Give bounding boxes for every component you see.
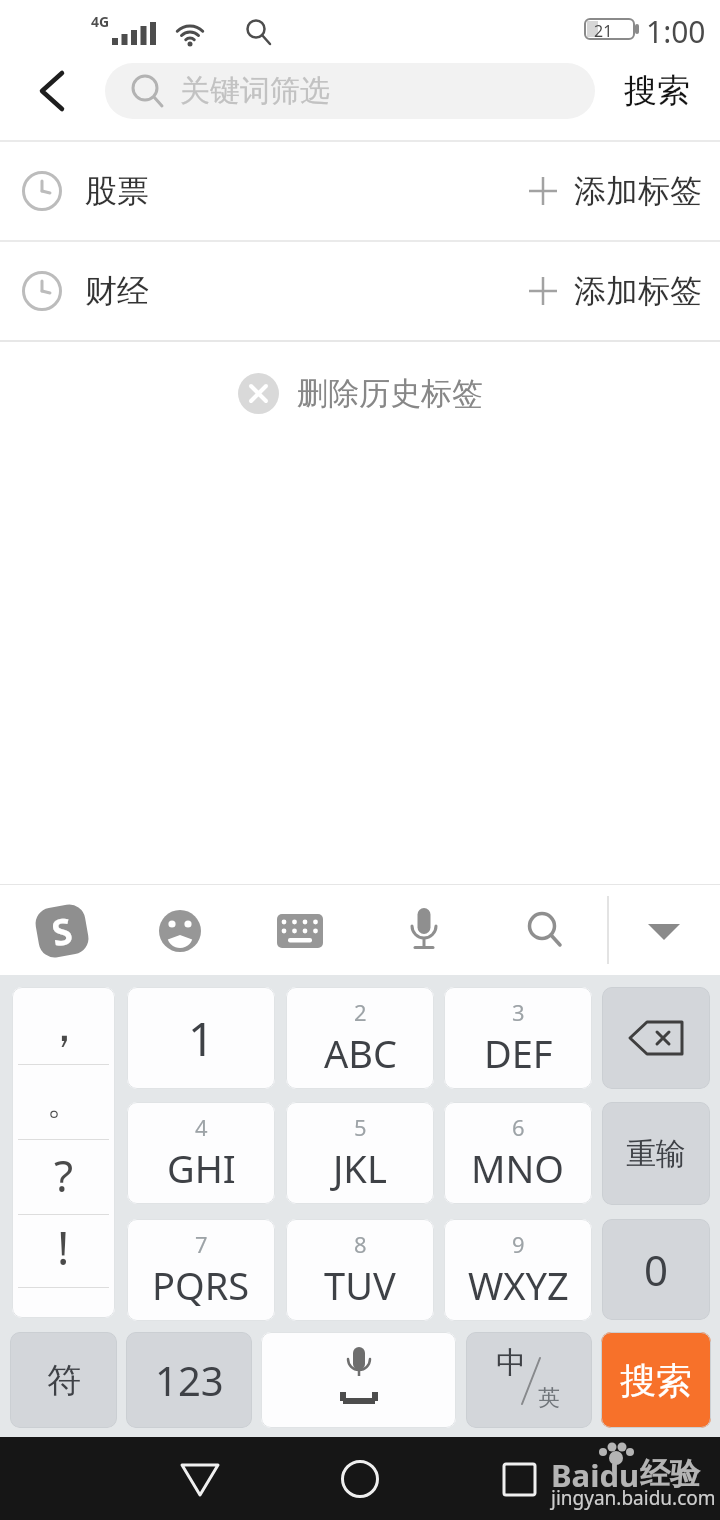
button[interactable] xyxy=(602,987,710,1089)
button[interactable]: 。 xyxy=(12,1065,115,1139)
button[interactable] xyxy=(261,1332,456,1428)
button[interactable]: 2 xyxy=(286,987,434,1089)
staticText: WXYZ xyxy=(468,1259,569,1311)
staticText: 财经 xyxy=(85,271,149,311)
staticText: 重输 xyxy=(626,1135,686,1173)
staticText: 6 xyxy=(512,1112,525,1142)
staticText: 123 xyxy=(155,1353,224,1407)
staticText: 7 xyxy=(195,1229,208,1259)
staticText: GHI xyxy=(167,1142,236,1194)
button[interactable]: ， xyxy=(12,989,115,1063)
staticText: 股票 xyxy=(85,171,149,211)
button[interactable]: 股票 xyxy=(0,142,720,240)
button[interactable] xyxy=(505,887,585,975)
staticText: MNO xyxy=(471,1142,565,1194)
staticText: 5 xyxy=(354,1112,367,1142)
staticText: 搜索 xyxy=(620,1358,692,1403)
staticText: 4G xyxy=(91,12,110,31)
button[interactable] xyxy=(24,70,76,112)
button[interactable] xyxy=(330,1437,390,1520)
button[interactable]: 删除历史标签 xyxy=(238,373,483,414)
button[interactable]: ? xyxy=(12,1138,115,1212)
button[interactable] xyxy=(633,887,695,975)
staticText: 9 xyxy=(512,1229,525,1259)
staticText: 21 xyxy=(594,20,613,42)
staticText: TUV xyxy=(324,1259,396,1311)
staticText: ， xyxy=(41,997,87,1055)
button[interactable]: 重输 xyxy=(602,1102,710,1205)
button[interactable]: 7 xyxy=(127,1219,275,1321)
button[interactable]: 1 xyxy=(127,987,275,1089)
button[interactable]: 6 xyxy=(444,1102,592,1204)
staticText: ? xyxy=(54,1145,74,1205)
staticText: 2 xyxy=(354,997,367,1027)
button[interactable]: 搜索 xyxy=(602,56,712,126)
staticText: DEF xyxy=(484,1027,553,1079)
staticText: Baidu xyxy=(551,1454,640,1496)
button[interactable]: 123 xyxy=(126,1332,252,1428)
staticText: 3 xyxy=(512,997,525,1027)
button[interactable] xyxy=(140,887,220,975)
button[interactable] xyxy=(384,887,464,975)
button[interactable] xyxy=(260,887,340,975)
staticText: JKL xyxy=(333,1142,387,1194)
staticText: 删除历史标签 xyxy=(297,374,483,413)
button[interactable]: 搜索 xyxy=(601,1332,711,1428)
button[interactable]: 0 xyxy=(602,1219,710,1320)
staticText: 搜索 xyxy=(624,70,690,112)
button[interactable]: 中 xyxy=(466,1332,592,1428)
staticText: 英 xyxy=(538,1384,560,1412)
staticText: 添加标签 xyxy=(574,171,702,211)
staticText: 关键词筛选 xyxy=(180,72,330,110)
button[interactable]: 5 xyxy=(286,1102,434,1204)
button[interactable]: S xyxy=(22,887,102,975)
staticText: 1:00 xyxy=(646,11,706,52)
staticText: S xyxy=(48,906,76,957)
button[interactable]: 财经 xyxy=(0,242,720,340)
staticText: 0 xyxy=(644,1241,669,1298)
staticText: 经验 xyxy=(640,1455,700,1493)
staticText: ! xyxy=(57,1216,70,1279)
staticText: 添加标签 xyxy=(574,271,702,311)
staticText: 4 xyxy=(195,1112,208,1142)
button[interactable]: 关键词筛选 xyxy=(105,63,595,119)
button[interactable]: 添加标签 xyxy=(515,242,720,340)
staticText: ABC xyxy=(324,1027,397,1079)
button[interactable]: ! xyxy=(12,1210,115,1284)
staticText: jingyan.baidu.com xyxy=(551,1485,716,1511)
button[interactable]: 符 xyxy=(10,1332,117,1428)
button[interactable]: 9 xyxy=(444,1219,592,1321)
staticText: 符 xyxy=(47,1359,81,1402)
staticText: 1 xyxy=(188,1007,215,1070)
button[interactable]: 添加标签 xyxy=(515,142,720,240)
button[interactable] xyxy=(490,1437,550,1520)
staticText: 。 xyxy=(47,1081,81,1124)
button[interactable]: 3 xyxy=(444,987,592,1089)
button[interactable] xyxy=(170,1437,230,1520)
button[interactable]: 4 xyxy=(127,1102,275,1204)
staticText: 8 xyxy=(354,1229,367,1259)
staticText: PQRS xyxy=(152,1259,250,1311)
button[interactable]: 8 xyxy=(286,1219,434,1321)
staticText: 中 xyxy=(496,1344,526,1382)
